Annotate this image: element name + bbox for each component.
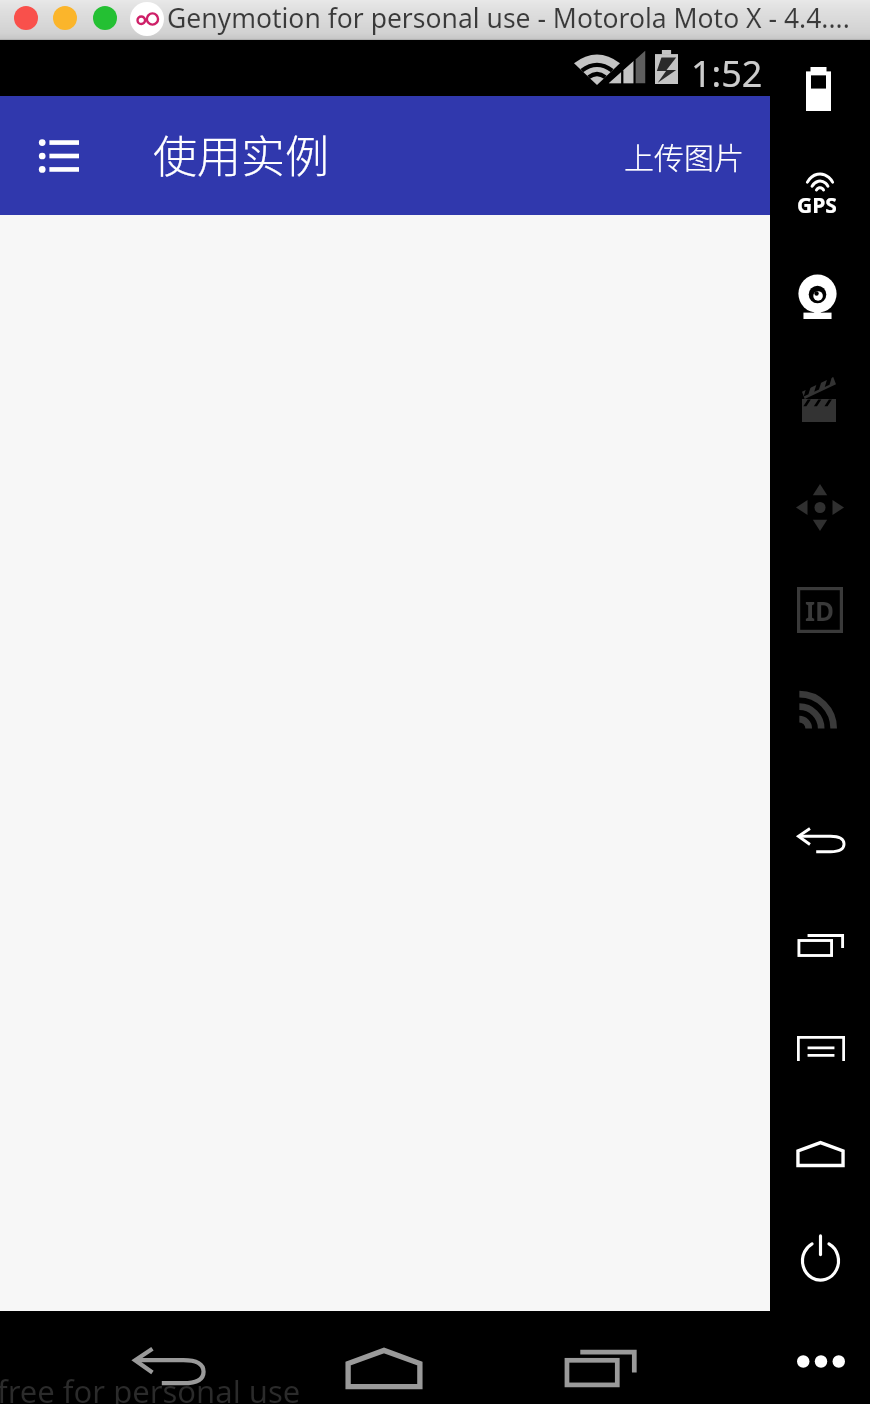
button[interactable]: Rotate [796, 484, 844, 531]
button[interactable]: Close window [14, 6, 38, 30]
staticText: Genymotion for personal use - Motorola M… [167, 0, 850, 36]
button[interactable]: Back [797, 828, 845, 853]
staticText: GPS [797, 191, 837, 220]
button[interactable]: Home [333, 1324, 435, 1400]
button[interactable]: Menu [12, 109, 106, 203]
button[interactable]: Video recorder [802, 376, 836, 422]
button[interactable]: Maximize window [93, 6, 117, 30]
button[interactable]: More options [797, 1355, 845, 1368]
button[interactable]: Camera [798, 275, 837, 319]
button[interactable]: Menu [797, 1036, 845, 1061]
button[interactable]: 上传图片 [598, 114, 770, 197]
button[interactable]: Identifiers [797, 587, 843, 633]
staticText: free for personal use [0, 1370, 301, 1404]
button[interactable]: Power [798, 1233, 843, 1281]
button[interactable]: Recents [797, 933, 845, 958]
staticText: 1:52 [691, 49, 763, 98]
button[interactable]: Recents [550, 1324, 652, 1400]
button[interactable]: Home [796, 1141, 845, 1167]
button[interactable]: Minimize window [53, 6, 77, 30]
button[interactable]: GPS [797, 174, 843, 216]
staticText: ID [805, 593, 835, 628]
button[interactable]: Back [118, 1324, 220, 1400]
button[interactable]: Network [797, 689, 836, 731]
button[interactable]: Battery [806, 67, 831, 111]
staticText: 上传图片 [624, 134, 744, 177]
staticText: 使用实例 [153, 122, 329, 186]
